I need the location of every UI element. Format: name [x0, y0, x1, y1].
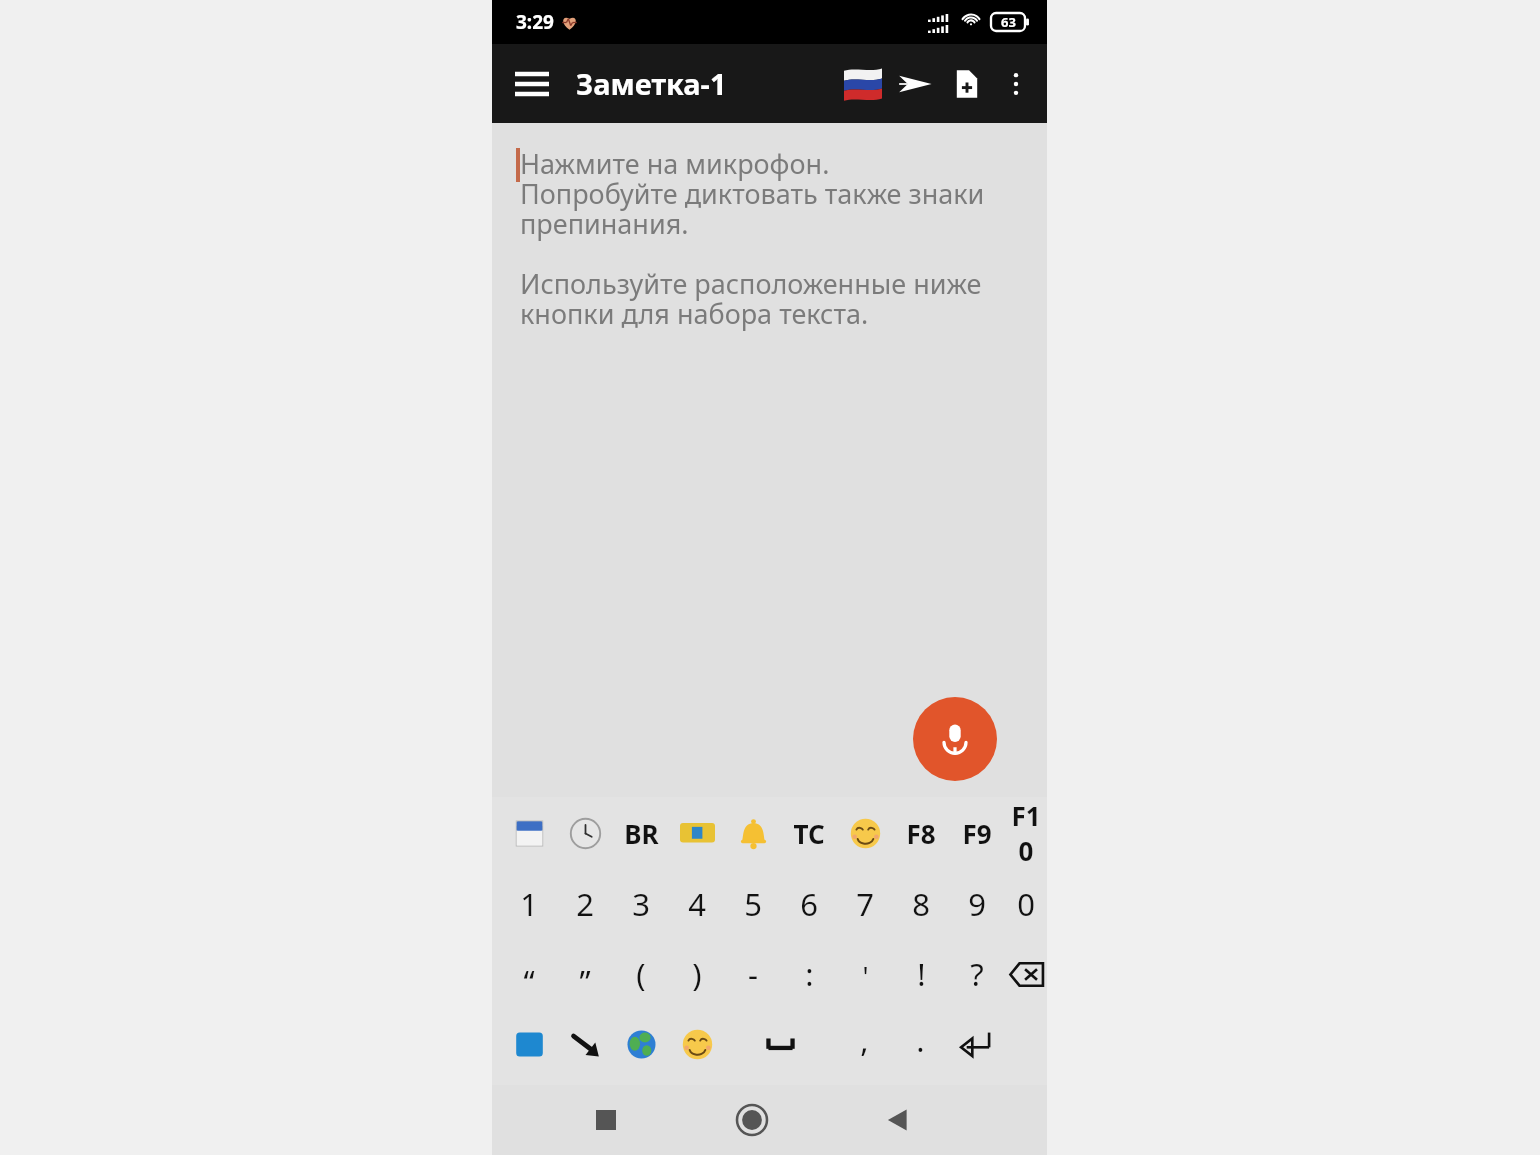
staticText: '	[862, 958, 869, 995]
button[interactable]: F10	[1005, 797, 1047, 869]
button[interactable]: F9	[949, 797, 1005, 869]
button[interactable]: Send	[889, 58, 941, 110]
staticText: .	[916, 1019, 925, 1061]
staticText: Нажмите на микрофон. Попробуйте диктоват…	[520, 145, 985, 331]
button[interactable]: 8	[893, 869, 949, 939]
staticText: 63	[1001, 13, 1016, 31]
staticText: 3:29	[516, 9, 554, 35]
staticText: -	[748, 953, 758, 995]
button[interactable]: Letters	[501, 1009, 557, 1079]
staticText: F9	[962, 816, 992, 851]
button[interactable]: New note	[941, 58, 993, 110]
button[interactable]: (	[613, 939, 669, 1009]
staticText: 9	[968, 883, 986, 925]
button[interactable]: !	[893, 939, 949, 1009]
button[interactable]: Enter	[948, 1009, 1004, 1079]
button[interactable]: 6	[781, 869, 837, 939]
button[interactable]: TC	[781, 797, 837, 869]
staticText: Заметка-1	[576, 64, 727, 103]
staticText: (	[636, 953, 646, 995]
staticText: !	[917, 953, 926, 995]
button[interactable]: 4	[669, 869, 725, 939]
button[interactable]: :	[781, 939, 837, 1009]
button[interactable]: 5	[725, 869, 781, 939]
staticText: 0	[1017, 883, 1035, 925]
button[interactable]: Space	[725, 1009, 836, 1079]
staticText: TC	[793, 816, 825, 851]
staticText: F8	[906, 816, 936, 851]
staticText: ,	[860, 1019, 869, 1061]
button[interactable]: 9	[949, 869, 1005, 939]
button[interactable]: BR	[613, 797, 669, 869]
button[interactable]: 0	[1005, 869, 1047, 939]
button[interactable]: Recent apps	[573, 1087, 639, 1153]
staticText: 5	[744, 883, 762, 925]
button[interactable]: ?	[949, 939, 1005, 1009]
button[interactable]: Home	[719, 1087, 785, 1153]
button[interactable]: Change language	[613, 1009, 669, 1079]
button[interactable]: )	[669, 939, 725, 1009]
button[interactable]: F8	[893, 797, 949, 869]
button[interactable]: 7	[837, 869, 893, 939]
staticText: 8	[912, 883, 930, 925]
button[interactable]: E key	[669, 797, 725, 869]
button[interactable]: Backspace	[1005, 939, 1047, 1009]
staticText: ?	[970, 953, 984, 995]
staticText: ”	[579, 960, 591, 1002]
button[interactable]: Emoji	[669, 1009, 725, 1079]
button[interactable]: .	[892, 1009, 948, 1079]
staticText: 3	[632, 883, 650, 925]
button[interactable]: 3	[613, 869, 669, 939]
staticText: 1	[520, 883, 538, 925]
button[interactable]: 2	[557, 869, 613, 939]
button[interactable]: ,	[836, 1009, 892, 1079]
button[interactable]: Clock	[557, 797, 613, 869]
button[interactable]: Bell	[725, 797, 781, 869]
staticText: :	[805, 953, 814, 995]
button[interactable]: '	[837, 939, 893, 1009]
button[interactable]: Language Russian	[837, 58, 889, 110]
staticText: F10	[1005, 798, 1047, 868]
staticText: 4	[688, 883, 706, 925]
button[interactable]: “	[501, 939, 557, 1009]
button[interactable]: Calendar	[501, 797, 557, 869]
button[interactable]: ”	[557, 939, 613, 1009]
button[interactable]: Menu	[506, 58, 558, 110]
staticText: BR	[624, 816, 659, 851]
button[interactable]: -	[725, 939, 781, 1009]
button[interactable]: Emoji	[837, 797, 893, 869]
button[interactable]: More options	[993, 61, 1039, 107]
staticText: “	[523, 960, 535, 1002]
staticText: 6	[800, 883, 818, 925]
button[interactable]: Microphone	[913, 697, 997, 781]
staticText: 7	[856, 883, 874, 925]
button[interactable]: 1	[501, 869, 557, 939]
button[interactable]: Back	[865, 1087, 931, 1153]
button[interactable]: Hide keyboard	[557, 1009, 613, 1079]
staticText: )	[692, 953, 702, 995]
staticText: 2	[576, 883, 594, 925]
